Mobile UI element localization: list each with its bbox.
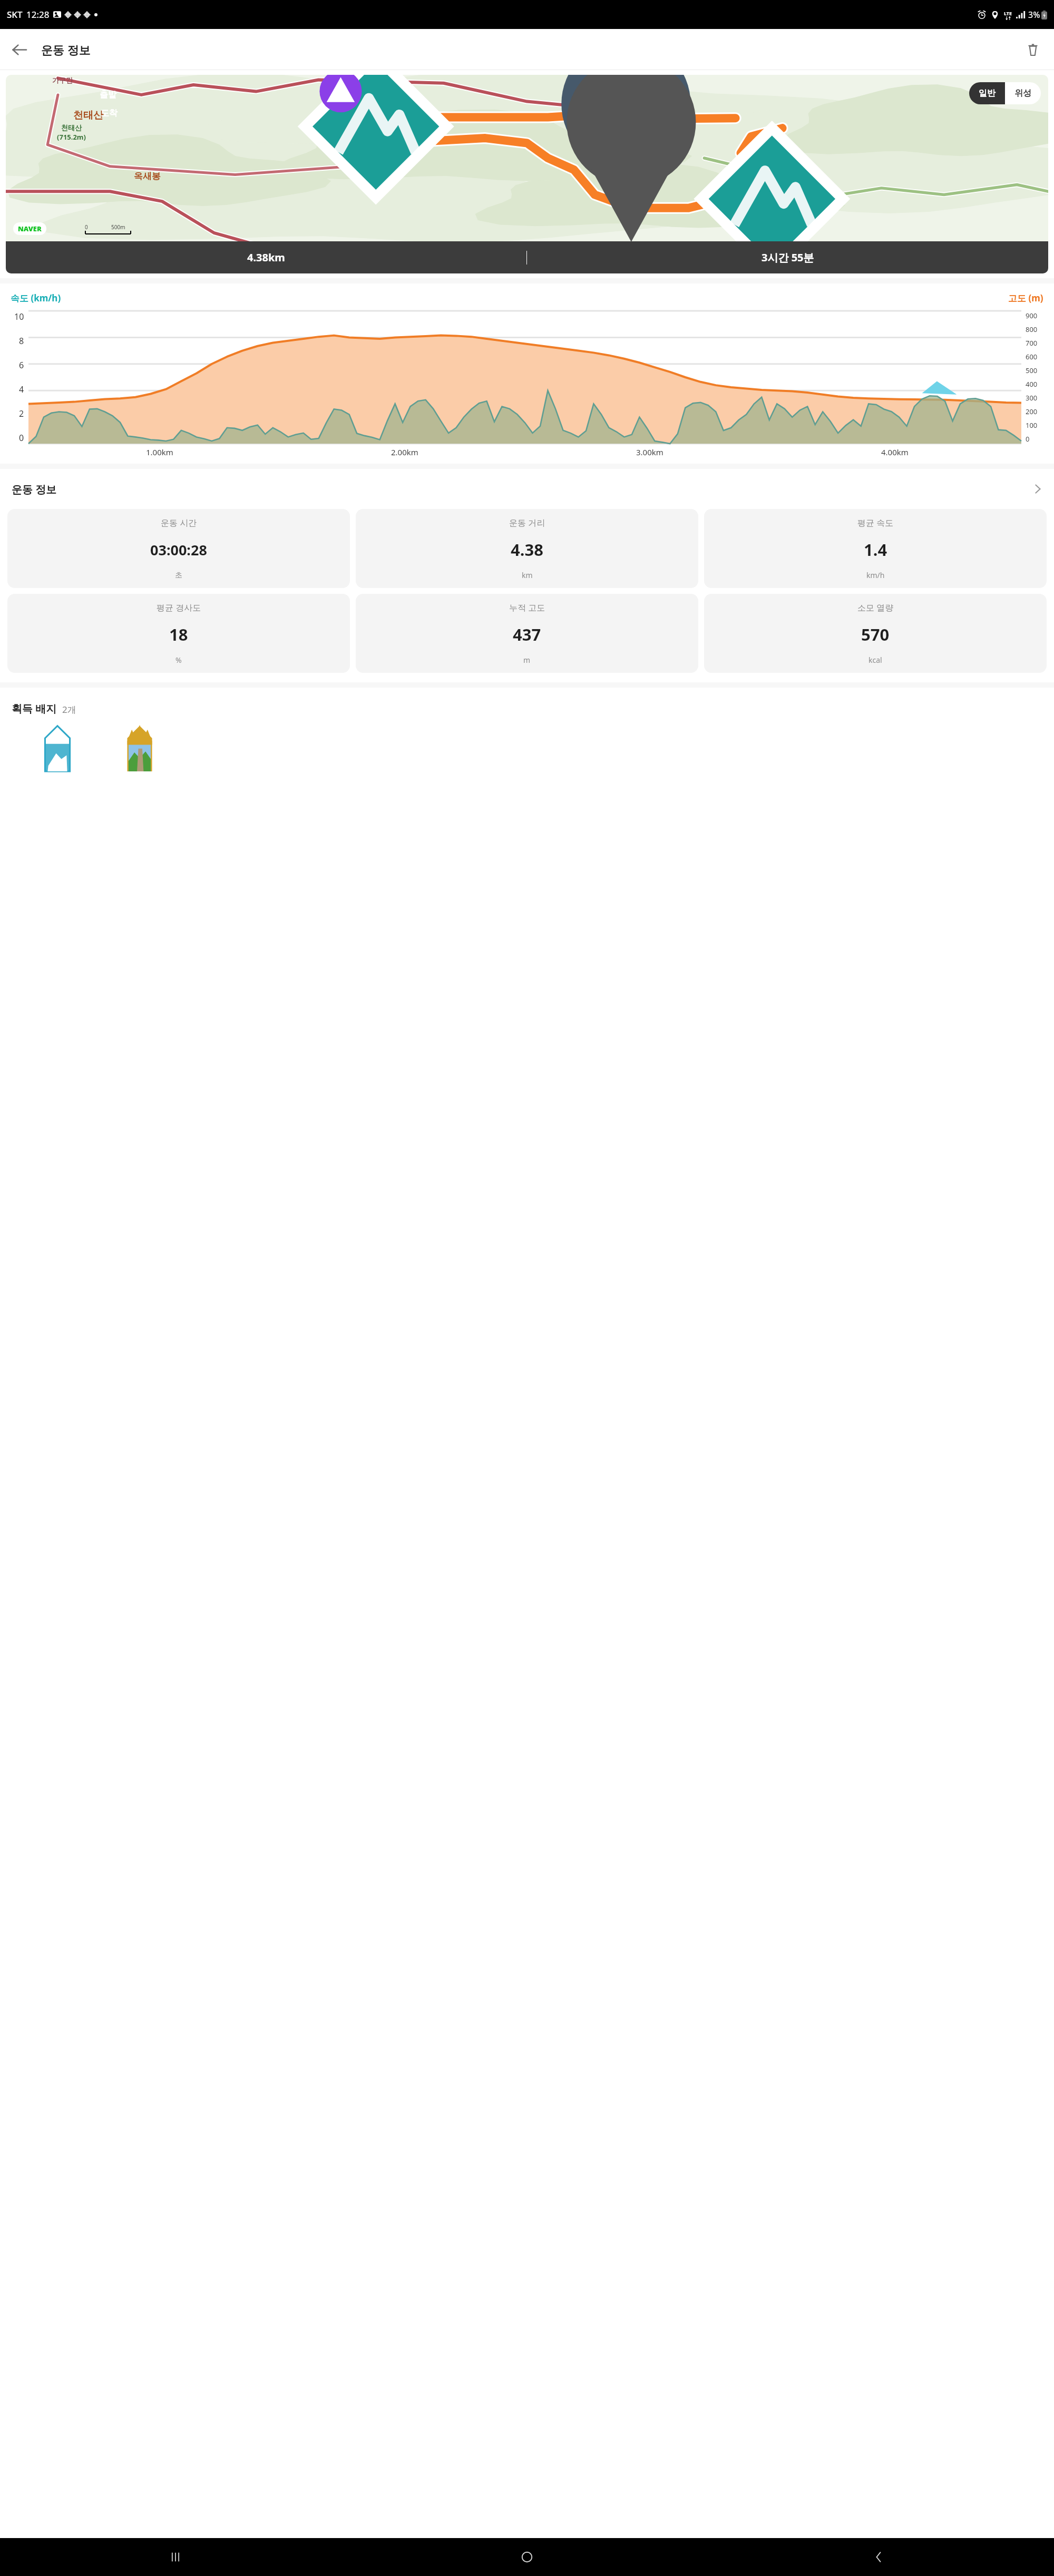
staticText: 고도 (m) — [1008, 292, 1043, 304]
button[interactable]: Home — [351, 2538, 702, 2576]
staticText: m — [523, 655, 531, 665]
staticText: 1.00km — [146, 447, 173, 457]
button[interactable]: 일반 — [969, 82, 1005, 104]
staticText: 500m — [111, 223, 125, 231]
staticText: 0 — [1026, 434, 1030, 444]
staticText: 437 — [513, 623, 541, 645]
staticText: % — [175, 655, 182, 665]
staticText: kcal — [868, 655, 882, 665]
staticText: 초 — [175, 571, 182, 580]
button[interactable]: Badge 대둔산 — [123, 724, 156, 771]
staticText: 옥새봉 — [134, 171, 161, 182]
button[interactable]: 운동 거리 — [356, 509, 698, 588]
staticText: 소모 열량 — [857, 602, 894, 613]
button[interactable]: 평균 속도 — [704, 509, 1047, 588]
button[interactable]: Delete — [1017, 34, 1049, 65]
staticText: 가구간 — [52, 76, 73, 84]
staticText: 출발 — [100, 90, 116, 100]
staticText: 800 — [1026, 325, 1038, 334]
button[interactable]: Back — [3, 34, 35, 65]
staticText: 0 — [19, 432, 24, 444]
staticText: 400 — [1026, 379, 1038, 389]
staticText: 10 — [14, 311, 24, 322]
staticText: 2.00km — [391, 447, 418, 457]
staticText: 300 — [1026, 393, 1038, 403]
button[interactable]: 평균 경사도 — [7, 594, 350, 673]
staticText: LTE — [1004, 10, 1012, 16]
staticText: 1.4 — [864, 538, 887, 561]
staticText: 600 — [1026, 352, 1038, 361]
staticText: 570 — [861, 623, 890, 645]
staticText: 18 — [169, 623, 188, 645]
staticText: 500 — [1026, 366, 1038, 375]
staticText: 천태산 (715.2m) — [57, 123, 86, 142]
staticText: 획득 배지 — [12, 701, 57, 716]
staticText: 2 — [19, 408, 24, 419]
staticText: 3시간 55분 — [762, 250, 814, 265]
button[interactable]: 천태산 — [6, 75, 1048, 273]
staticText: 900 — [1026, 311, 1038, 320]
staticText: 도착 — [101, 108, 118, 119]
staticText: 3% — [1028, 9, 1040, 21]
staticText: 평균 경사도 — [157, 602, 201, 613]
staticText: 일반 — [979, 88, 996, 99]
staticText: 3.00km — [636, 447, 663, 457]
button[interactable]: Back — [702, 2538, 1054, 2576]
button[interactable]: 위성 — [1005, 82, 1041, 104]
staticText: 평균 속도 — [857, 517, 894, 528]
staticText: SKT — [7, 8, 23, 21]
staticText: 운동 정보 — [41, 42, 91, 57]
staticText: 8 — [19, 335, 24, 347]
staticText: 운동 정보 — [12, 482, 57, 496]
staticText: km/h — [866, 570, 885, 580]
staticText: 12:28 — [26, 8, 50, 21]
staticText: 03:00:28 — [150, 540, 207, 560]
staticText: 0 — [85, 223, 88, 231]
staticText: 100 — [1026, 420, 1038, 430]
button[interactable]: Badge 천태산 — [41, 724, 74, 771]
staticText: 운동 거리 — [509, 517, 545, 528]
staticText: 운동 시간 — [161, 517, 197, 528]
button[interactable]: 누적 고도 — [356, 594, 698, 673]
staticText: km — [522, 570, 533, 580]
staticText: 200 — [1026, 407, 1038, 416]
button[interactable]: 운동 시간 — [7, 509, 350, 588]
staticText: 누적 고도 — [509, 602, 545, 613]
staticText: 4.38km — [247, 250, 285, 265]
button[interactable]: Recents — [0, 2538, 351, 2576]
staticText: 속도 (km/h) — [11, 292, 61, 304]
staticText: 6 — [19, 359, 24, 371]
staticText: 4 — [19, 384, 24, 395]
staticText: 천태산 — [73, 109, 103, 122]
staticText: 4.38 — [511, 538, 543, 561]
button[interactable]: 운동 정보 — [0, 469, 1054, 509]
staticText: 2개 — [62, 703, 76, 716]
button[interactable]: 소모 열량 — [704, 594, 1047, 673]
staticText: 4.00km — [881, 447, 909, 457]
staticText: 700 — [1026, 338, 1038, 348]
staticText: NAVER — [18, 224, 42, 233]
staticText: 위성 — [1014, 88, 1031, 99]
